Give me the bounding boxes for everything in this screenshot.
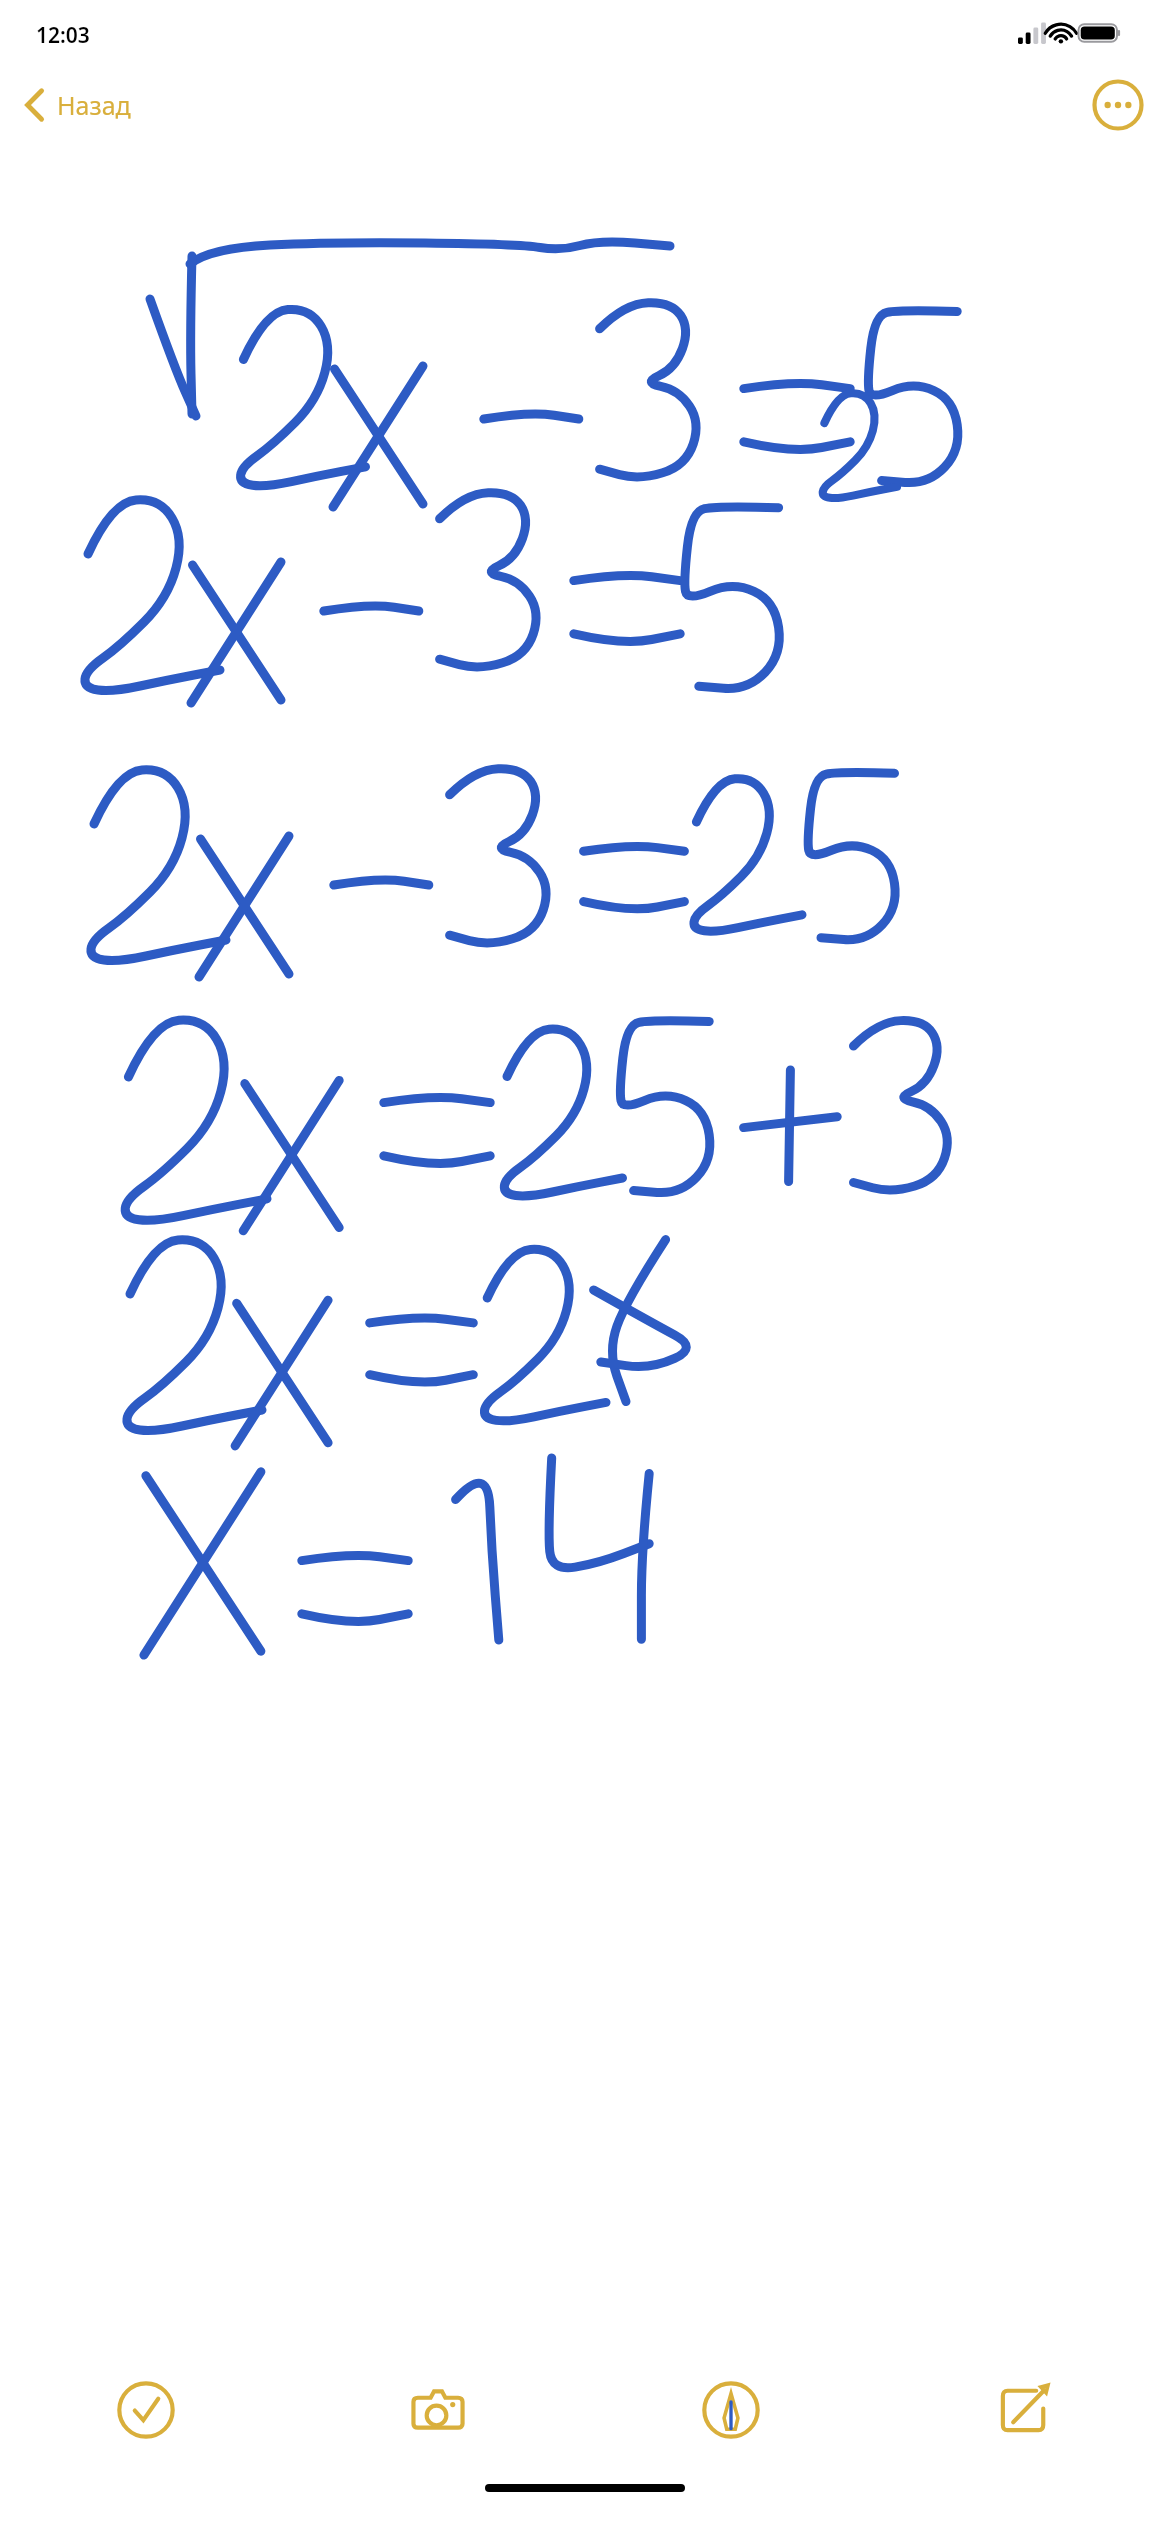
button[interactable]: Done [0, 2344, 292, 2476]
button[interactable]: Markup [584, 2344, 877, 2476]
button[interactable]: More options [1092, 79, 1144, 131]
staticText: Назад [57, 88, 131, 122]
staticText: 12:03 [36, 21, 90, 50]
button[interactable]: Compose [877, 2344, 1170, 2476]
button[interactable]: Назад [16, 82, 139, 128]
button[interactable]: Camera [292, 2344, 584, 2476]
